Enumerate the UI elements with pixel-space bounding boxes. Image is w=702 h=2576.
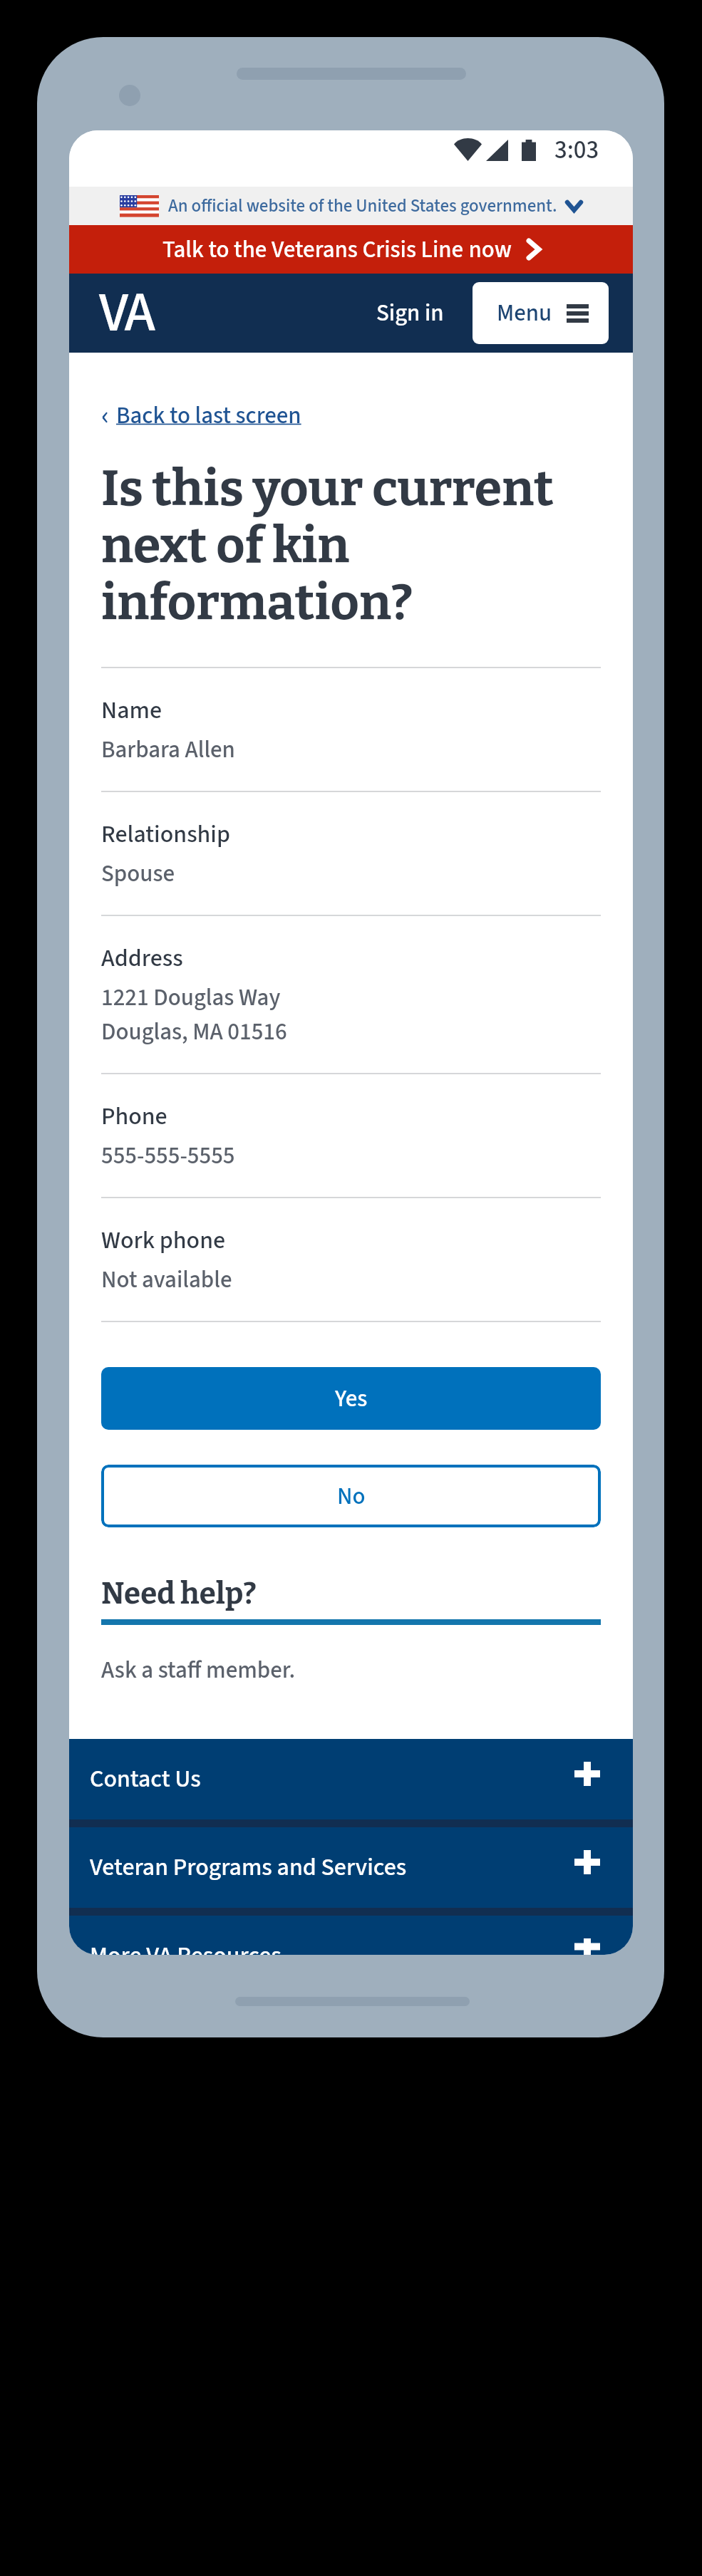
staticText: No xyxy=(337,1480,366,1513)
staticText: Relationship xyxy=(101,817,230,851)
button[interactable]: Yes xyxy=(101,1367,601,1430)
staticText: Contact Us xyxy=(90,1762,201,1796)
staticText: Work phone xyxy=(101,1223,225,1257)
button[interactable]: Talk to the xyxy=(69,225,633,274)
staticText: Back to last screen xyxy=(116,399,301,432)
staticText: An official website of the United States… xyxy=(168,193,557,219)
staticText: Name xyxy=(101,693,162,727)
staticText: ‹ xyxy=(101,395,110,436)
other: Expand Veteran Programs and Services xyxy=(574,1850,600,1874)
staticText: Barbara Allen xyxy=(101,733,235,767)
staticText: Menu xyxy=(497,296,552,330)
staticText: Is this your current next of kin informa… xyxy=(101,459,576,633)
staticText: 1221 Douglas Way xyxy=(101,981,281,1014)
button[interactable]: ‹ xyxy=(101,395,301,436)
button[interactable]: Veteran Programs and Services xyxy=(69,1827,633,1908)
staticText: Douglas, MA 01516 xyxy=(101,1015,287,1049)
staticText: Phone xyxy=(101,1099,167,1133)
staticText: More VA Resources xyxy=(90,1938,282,1955)
button[interactable]: An official website of the United States… xyxy=(120,193,582,219)
other: Expand Contact Us xyxy=(574,1762,600,1786)
button[interactable]: Sign in xyxy=(371,289,450,337)
staticText: Address xyxy=(101,941,183,975)
button[interactable]: Menu xyxy=(473,282,609,344)
button[interactable]: No xyxy=(101,1465,601,1527)
staticText: Not available xyxy=(101,1263,232,1297)
staticText: now xyxy=(464,233,512,266)
staticText: Veterans Crisis Line xyxy=(272,233,464,266)
staticText: Yes xyxy=(335,1382,368,1416)
staticText: Veteran Programs and Services xyxy=(90,1850,407,1884)
staticText: Talk to the xyxy=(162,233,272,266)
button[interactable]: Contact Us xyxy=(69,1739,633,1819)
other: Expand More VA Resources xyxy=(574,1938,600,1955)
staticText: 555-555-5555 xyxy=(101,1139,235,1173)
staticText: VA xyxy=(99,274,153,353)
staticText: 3:03 xyxy=(554,133,599,168)
staticText: Sign in xyxy=(376,296,444,330)
button[interactable]: More VA Resources xyxy=(69,1916,633,1955)
staticText: Ask a staff member. xyxy=(101,1653,296,1687)
staticText: Need help? xyxy=(101,1576,257,1611)
staticText: Spouse xyxy=(101,857,175,890)
